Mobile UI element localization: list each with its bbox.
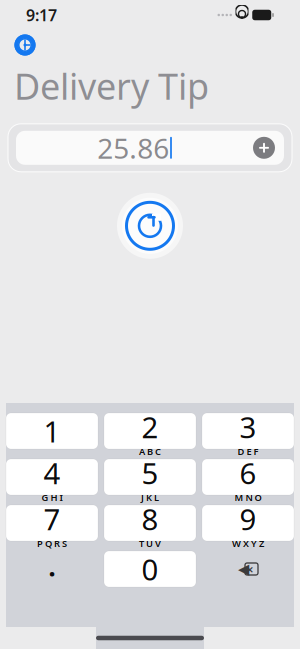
staticText: T U V	[139, 537, 161, 550]
button[interactable]: 5	[104, 459, 196, 495]
staticText: .	[48, 545, 56, 584]
staticText: ×	[246, 560, 254, 578]
staticText: J K L	[141, 491, 159, 504]
button[interactable]: Refresh tip	[114, 190, 186, 262]
button[interactable]: Settings	[0, 30, 36, 56]
staticText: 9:17	[26, 4, 57, 26]
staticText: D E F	[237, 445, 258, 458]
button[interactable]: 2	[104, 413, 196, 449]
staticText: 0	[141, 549, 158, 588]
staticText: 3	[239, 407, 256, 446]
button[interactable]: Decimal point	[6, 551, 98, 587]
staticText: 5	[141, 453, 158, 492]
staticText: 8	[141, 499, 158, 538]
button[interactable]: 3	[202, 413, 294, 449]
button[interactable]: 8	[104, 505, 196, 541]
button[interactable]: 0	[104, 551, 196, 587]
staticText: 25.86	[97, 129, 169, 166]
staticText: A B C	[139, 445, 161, 458]
button[interactable]: 6	[202, 459, 294, 495]
button[interactable]: Clear text	[253, 137, 284, 159]
staticText: G H I	[41, 491, 62, 504]
staticText: Delivery Tip	[14, 62, 209, 110]
staticText: 2	[141, 407, 158, 446]
staticText: 9	[239, 499, 256, 538]
staticText: W X Y Z	[232, 537, 264, 550]
staticText: 4	[43, 453, 60, 492]
staticText: ◀	[238, 561, 249, 577]
staticText: 1	[43, 411, 60, 450]
button[interactable]: 1	[6, 413, 98, 449]
button[interactable]: 4	[6, 459, 98, 495]
button[interactable]: Delete	[202, 551, 294, 587]
staticText: P Q R S	[37, 537, 67, 550]
staticText: 6	[239, 453, 256, 492]
staticText: M N O	[234, 491, 261, 504]
button[interactable]: 7	[6, 505, 98, 541]
button[interactable]: 9	[202, 505, 294, 541]
staticText: 7	[43, 499, 60, 538]
